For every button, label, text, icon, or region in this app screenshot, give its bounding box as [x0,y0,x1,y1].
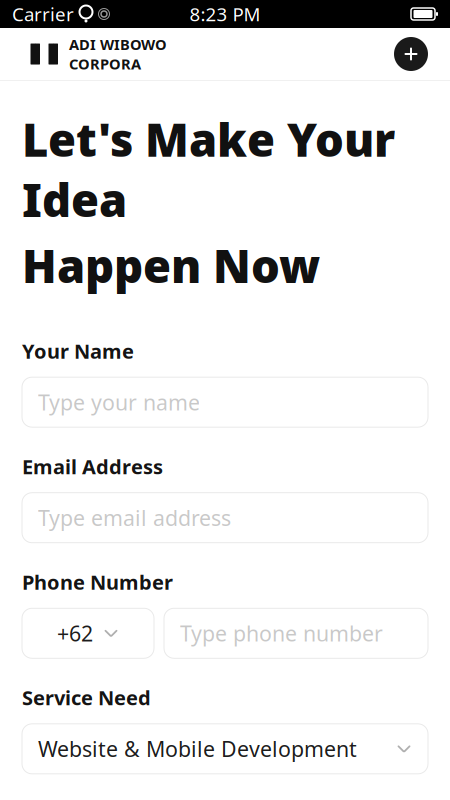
button[interactable]: Type email address [22,493,428,543]
staticText: ADI WIBOWO [69,34,167,54]
staticText: Email Address [22,453,163,480]
staticText: Let's Make Your Idea [22,109,395,229]
button[interactable]: Type phone number [164,608,428,658]
button[interactable]: Adi Wibowo Corpora home [22,34,167,73]
button[interactable]: Close [394,37,428,71]
staticText: Happen Now [22,235,320,296]
staticText: Type phone number [180,619,383,647]
staticText: Type email address [38,504,231,532]
button[interactable]: Website & Mobile Development [22,724,428,774]
staticText: Phone Number [22,569,173,595]
staticText: Your Name [22,338,134,364]
staticText: 8:23 PM [189,2,260,26]
staticText: CORPORA [69,54,141,73]
button[interactable]: Type your name [22,377,428,427]
staticText: Website & Mobile Development [38,735,357,763]
staticText: Carrier [12,2,74,26]
staticText: +62 [57,619,93,647]
staticText: Type your name [38,388,200,416]
staticText: Service Need [22,684,151,711]
button[interactable]: Country code, plus 62 [22,608,154,658]
